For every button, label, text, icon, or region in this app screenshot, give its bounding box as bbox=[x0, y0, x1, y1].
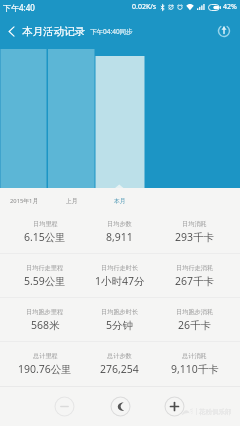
staticText: 日均行走时长 bbox=[101, 264, 139, 272]
staticText: 日均跑步消耗 bbox=[176, 308, 214, 316]
staticText: 5.59公里 bbox=[24, 274, 66, 288]
staticText: 日均行走里程 bbox=[26, 264, 64, 272]
button[interactable]: 本月 bbox=[96, 191, 144, 210]
button[interactable]: 总计里程 bbox=[8, 342, 82, 386]
button[interactable]: Decrease bbox=[52, 394, 76, 418]
staticText: 本月活动记录 bbox=[22, 25, 85, 38]
staticText: 276,254 bbox=[100, 362, 139, 376]
staticText: 日均步数 bbox=[107, 220, 132, 228]
button[interactable]: Back bbox=[0, 20, 22, 42]
staticText: 本月 bbox=[114, 197, 126, 204]
button[interactable]: 总计消耗 bbox=[157, 342, 232, 386]
staticText: 日均跑步里程 bbox=[26, 308, 64, 316]
staticText: 5分钟 bbox=[106, 318, 134, 332]
staticText: 568米 bbox=[31, 318, 60, 332]
staticText: 8,911 bbox=[106, 230, 133, 244]
button[interactable]: 日均里程 bbox=[8, 210, 82, 254]
button[interactable]: 日均步数 bbox=[82, 210, 157, 254]
staticText: 1小时47分 bbox=[95, 274, 145, 288]
staticText: 下午4:40 bbox=[3, 2, 35, 13]
button[interactable]: 日均消耗 bbox=[157, 210, 232, 254]
staticText: 下午04:40同步 bbox=[90, 27, 133, 36]
button[interactable]: 日均跑步消耗 bbox=[157, 298, 232, 342]
button[interactable]: 日均跑步时长 bbox=[82, 298, 157, 342]
button[interactable]: 总计步数 bbox=[82, 342, 157, 386]
staticText: 267千卡 bbox=[175, 274, 215, 288]
staticText: 上月 bbox=[66, 197, 78, 204]
staticText: 26千卡 bbox=[178, 318, 212, 332]
button[interactable]: 日均跑步里程 bbox=[8, 298, 82, 342]
staticText: 6.15公里 bbox=[24, 230, 66, 244]
staticText: 总计消耗 bbox=[182, 352, 207, 360]
staticText: 0.02K/s bbox=[132, 2, 157, 12]
button[interactable]: Sync bbox=[213, 20, 235, 42]
staticText: 日均里程 bbox=[33, 220, 58, 228]
staticText: 总计步数 bbox=[107, 352, 132, 360]
button[interactable]: Sleep mode bbox=[108, 394, 132, 418]
button[interactable]: 2015年1月 bbox=[0, 191, 48, 210]
button[interactable]: 上月 bbox=[48, 191, 96, 210]
staticText: 花粉俱乐部 bbox=[199, 408, 232, 416]
staticText: 日均行走消耗 bbox=[176, 264, 214, 272]
staticText: 2015年1月 bbox=[10, 197, 39, 205]
button[interactable]: Add bbox=[162, 394, 186, 418]
button[interactable]: 日均行走时长 bbox=[82, 254, 157, 298]
staticText: 190.76公里 bbox=[18, 362, 72, 376]
staticText: 293千卡 bbox=[175, 230, 215, 244]
staticText: 9,110千卡 bbox=[171, 362, 219, 376]
button[interactable]: 日均行走消耗 bbox=[157, 254, 232, 298]
staticText: 日均跑步时长 bbox=[101, 308, 139, 316]
staticText: 总计里程 bbox=[33, 352, 58, 360]
staticText: 日均消耗 bbox=[182, 220, 207, 228]
staticText: 42% bbox=[223, 2, 237, 12]
button[interactable]: 日均行走里程 bbox=[8, 254, 82, 298]
